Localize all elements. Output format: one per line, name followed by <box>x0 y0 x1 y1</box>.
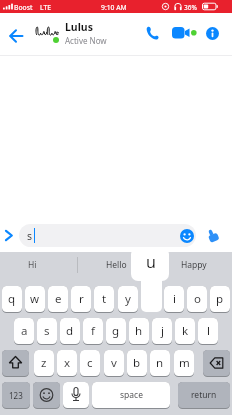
staticText: g <box>112 323 120 339</box>
staticText: v <box>111 355 117 371</box>
staticText: Hi <box>28 259 37 271</box>
button[interactable]: p <box>210 286 230 313</box>
button[interactable]: 123 <box>2 382 30 409</box>
staticText: c <box>87 355 93 371</box>
button[interactable]: Hi <box>0 252 64 277</box>
staticText: 123 <box>9 390 23 401</box>
staticText: return <box>191 389 217 401</box>
button[interactable]: e <box>48 286 68 313</box>
staticText: m <box>179 355 190 371</box>
staticText: p <box>216 291 224 307</box>
button[interactable]: d <box>60 318 80 345</box>
staticText: d <box>66 323 74 339</box>
button[interactable]: i <box>164 286 184 313</box>
staticText: k <box>182 323 189 339</box>
staticText: LTE <box>40 3 51 12</box>
staticText: x <box>64 355 71 371</box>
button[interactable]: z <box>34 350 54 377</box>
button[interactable]: l <box>198 318 218 345</box>
button[interactable]: h <box>129 318 149 345</box>
button[interactable] <box>3 229 15 242</box>
button[interactable]: s <box>37 318 57 345</box>
staticText: q <box>8 291 16 307</box>
button[interactable] <box>33 382 60 409</box>
button[interactable]: return <box>178 382 230 409</box>
button[interactable]: a <box>14 318 34 345</box>
button[interactable]: b <box>127 350 147 377</box>
staticText: s <box>27 229 33 243</box>
staticText: j <box>161 323 164 339</box>
button[interactable]: Happy <box>155 252 232 277</box>
button[interactable] <box>19 224 196 247</box>
button[interactable]: Hello <box>77 252 155 277</box>
button[interactable] <box>2 350 29 377</box>
staticText: e <box>55 291 62 307</box>
button[interactable]: w <box>25 286 45 313</box>
button[interactable] <box>7 27 25 45</box>
button[interactable]: o <box>187 286 207 313</box>
button[interactable]: v <box>104 350 124 377</box>
staticText: i <box>173 291 176 307</box>
staticText: r <box>79 291 84 307</box>
button[interactable] <box>63 382 89 409</box>
button[interactable] <box>204 226 222 244</box>
button[interactable]: m <box>174 350 194 377</box>
staticText: 36% <box>184 3 197 12</box>
staticText: s <box>44 323 50 339</box>
staticText: f <box>91 323 95 339</box>
staticText: Active Now <box>65 35 107 46</box>
button[interactable]: t <box>94 286 114 313</box>
button[interactable]: c <box>80 350 100 377</box>
button[interactable]: f <box>83 318 103 345</box>
button[interactable] <box>180 229 194 243</box>
button[interactable]: r <box>71 286 91 313</box>
button[interactable] <box>206 27 219 40</box>
staticText: n <box>156 355 164 371</box>
staticText: w <box>30 291 40 307</box>
staticText: Boost <box>14 3 33 12</box>
button[interactable] <box>203 350 230 377</box>
button[interactable]: g <box>106 318 126 345</box>
staticText: a <box>21 323 28 339</box>
staticText: h <box>135 323 143 339</box>
staticText: z <box>41 355 47 371</box>
staticText: u <box>146 251 156 273</box>
button[interactable]: q <box>2 286 22 313</box>
button[interactable]: j <box>152 318 172 345</box>
button[interactable]: n <box>150 350 170 377</box>
staticText: o <box>194 291 201 307</box>
staticText: Hello <box>106 259 127 271</box>
staticText: y <box>125 291 131 307</box>
staticText: l <box>207 323 210 339</box>
staticText: t <box>102 291 107 307</box>
button[interactable]: y <box>118 286 138 313</box>
button[interactable] <box>144 25 160 41</box>
staticText: Happy <box>181 259 207 271</box>
button[interactable] <box>171 26 198 40</box>
button[interactable]: x <box>57 350 77 377</box>
staticText: 9:10 AM <box>101 3 127 12</box>
staticText: space <box>120 389 143 401</box>
button[interactable]: space <box>92 382 170 409</box>
staticText: b <box>133 355 141 371</box>
staticText: Lulus <box>65 20 93 34</box>
button[interactable]: k <box>175 318 195 345</box>
